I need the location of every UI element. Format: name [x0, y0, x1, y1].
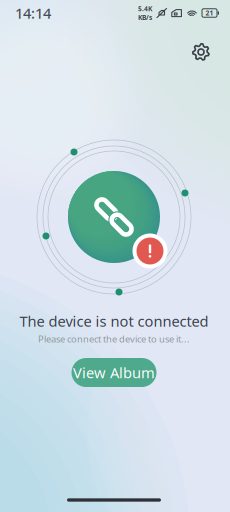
button[interactable]: Settings	[184, 35, 218, 69]
staticText: 5.4K	[138, 4, 152, 13]
staticText: The device is not connected	[19, 311, 208, 331]
staticText: View Album	[73, 363, 155, 382]
staticText: KB/s	[138, 13, 152, 22]
staticText: 14:14	[15, 3, 51, 23]
button[interactable]: View Album	[71, 358, 156, 387]
staticText: 21	[205, 9, 213, 17]
staticText: Please connect the device to use it...	[38, 333, 190, 345]
